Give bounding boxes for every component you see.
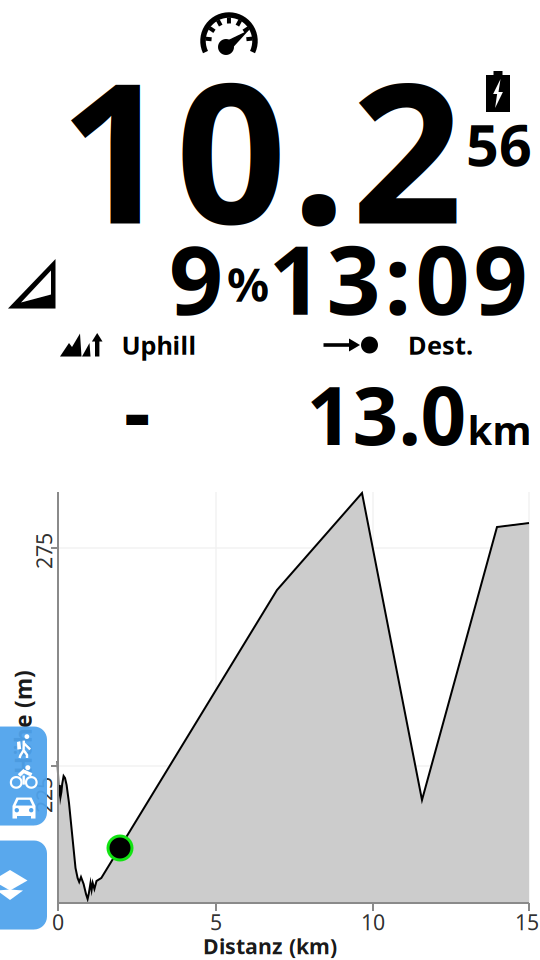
staticText: 5 xyxy=(210,908,222,936)
staticText: . xyxy=(291,19,346,277)
staticText: 3 xyxy=(326,215,380,341)
staticText: % xyxy=(227,253,269,315)
staticText: 13.0 xyxy=(306,361,466,467)
staticText: 1 xyxy=(268,215,322,341)
staticText: 275 xyxy=(26,537,62,565)
staticText: Höhe (m) xyxy=(0,707,75,737)
staticText: 9 xyxy=(473,215,527,341)
staticText: 15 xyxy=(515,908,539,936)
staticText: 56 xyxy=(466,106,532,182)
staticText: 0 xyxy=(415,215,469,341)
staticText: Dest. xyxy=(408,328,473,362)
button[interactable]: Driving navigation xyxy=(6,792,42,823)
staticText: 225 xyxy=(26,781,62,809)
staticText: 1 xyxy=(59,19,170,277)
button[interactable]: Walking navigation xyxy=(5,730,41,761)
button[interactable]: Cycling navigation xyxy=(6,761,42,792)
staticText: : xyxy=(384,215,411,341)
staticText: - xyxy=(124,355,150,465)
staticText: 0 xyxy=(175,19,286,277)
staticText: 2 xyxy=(351,19,462,277)
staticText: km xyxy=(467,403,531,456)
staticText: Distanz (km) xyxy=(203,932,337,960)
staticText: 10 xyxy=(361,908,385,936)
staticText: Uphill xyxy=(121,328,196,362)
button[interactable]: Map layers xyxy=(0,840,47,929)
staticText: 9 xyxy=(169,215,223,341)
staticText: 0 xyxy=(52,908,64,936)
